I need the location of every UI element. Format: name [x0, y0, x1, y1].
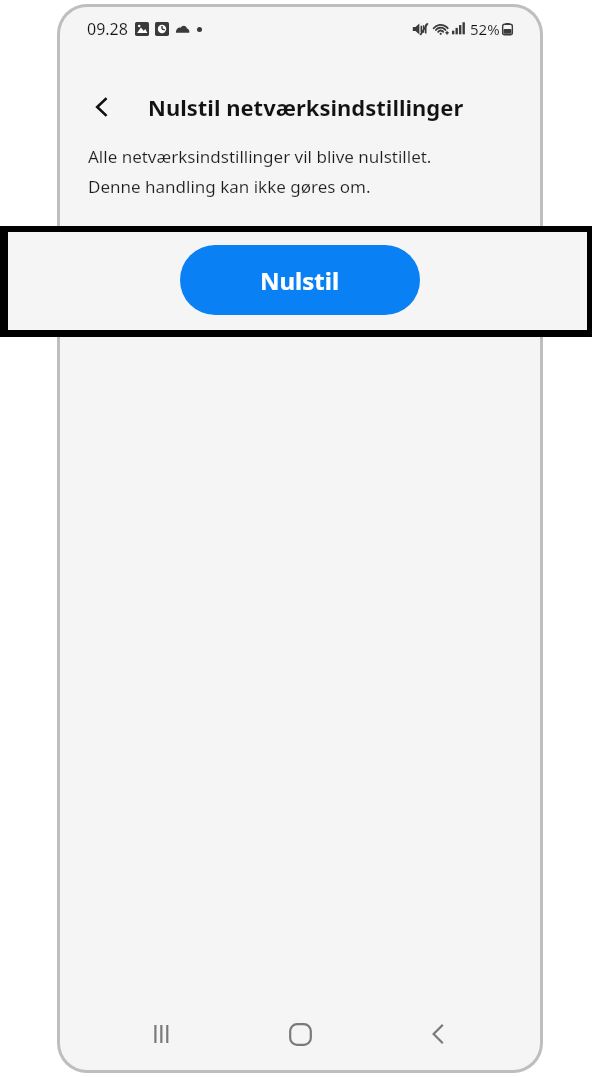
staticText: 52% — [470, 19, 500, 39]
staticText: 09.28 — [87, 18, 128, 40]
staticText: Nulstil — [260, 264, 340, 297]
button[interactable]: Recent apps — [126, 1006, 198, 1062]
button[interactable]: Back — [80, 85, 124, 129]
button[interactable]: Nulstil — [180, 245, 420, 315]
button[interactable]: Back — [402, 1006, 474, 1062]
staticText: Denne handling kan ikke gøres om. — [88, 175, 371, 198]
staticText: Nulstil netværksindstillinger — [148, 92, 464, 122]
button[interactable]: Home — [264, 1006, 336, 1062]
staticText: Alle netværksindstillinger vil blive nul… — [88, 145, 432, 168]
